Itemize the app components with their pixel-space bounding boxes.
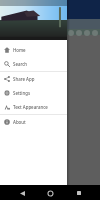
button[interactable]: Settings [0, 86, 67, 100]
staticText: Share App [13, 76, 35, 82]
staticText: About [13, 119, 26, 125]
button[interactable]: Share App [0, 72, 67, 86]
staticText: Settings [13, 90, 31, 96]
staticText: Search [13, 61, 28, 67]
staticText: Home [13, 47, 26, 53]
button[interactable]: Search [0, 57, 67, 71]
button[interactable]: Home [0, 43, 67, 57]
staticText: Text Appearance [13, 104, 48, 110]
button[interactable]: Home [43, 186, 57, 200]
button[interactable]: Back [15, 186, 29, 200]
button[interactable]: About [0, 115, 67, 129]
button[interactable]: Text Appearance [0, 100, 67, 114]
button[interactable]: Recent apps [72, 186, 86, 200]
